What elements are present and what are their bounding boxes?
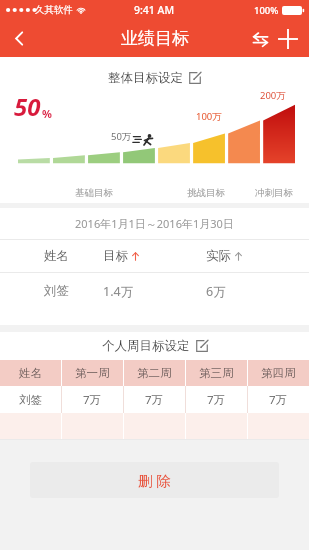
- button[interactable]: 删 除: [30, 462, 279, 498]
- staticText: 7万: [207, 392, 226, 408]
- staticText: 第四周: [261, 366, 296, 380]
- staticText: 200万: [260, 89, 286, 102]
- staticText: 第三周: [199, 366, 234, 380]
- button[interactable]: Switch: [248, 27, 272, 51]
- staticText: 个人周目标设定: [102, 338, 190, 354]
- staticText: 整体目标设定: [108, 70, 183, 86]
- staticText: 刘签: [19, 393, 42, 407]
- staticText: 50: [14, 90, 41, 123]
- staticText: 刘签: [44, 283, 69, 299]
- staticText: 7万: [83, 392, 102, 408]
- staticText: %: [42, 106, 52, 121]
- button[interactable]: Back: [0, 20, 38, 57]
- staticText: 100万: [196, 110, 222, 123]
- staticText: 7万: [145, 392, 164, 408]
- staticText: 7万: [269, 392, 288, 408]
- button[interactable]: 整体目标设定: [104, 68, 205, 88]
- button[interactable]: Add: [275, 26, 301, 52]
- staticText: 久其软件: [35, 4, 73, 16]
- staticText: 实际: [206, 248, 231, 264]
- staticText: 基础目标: [75, 187, 113, 199]
- button[interactable]: 刘签: [0, 273, 309, 309]
- staticText: 9:41 AM: [134, 3, 175, 17]
- staticText: 删 除: [138, 470, 171, 490]
- staticText: 50万: [111, 130, 132, 143]
- button[interactable]: 刘签: [0, 386, 309, 413]
- button[interactable]: 个人周目标设定: [98, 336, 212, 356]
- staticText: 2016年1月1日～2016年1月30日: [75, 216, 234, 231]
- staticText: 6万: [206, 283, 226, 300]
- staticText: 第二周: [137, 366, 172, 380]
- staticText: 目标: [103, 248, 128, 264]
- staticText: 第一周: [75, 366, 110, 380]
- staticText: 业绩目标: [121, 28, 189, 49]
- staticText: 1.4万: [103, 283, 134, 300]
- staticText: 100%: [254, 4, 279, 17]
- staticText: 冲刺目标: [255, 187, 293, 199]
- staticText: 姓名: [44, 248, 69, 264]
- staticText: 姓名: [19, 366, 42, 380]
- staticText: 挑战目标: [187, 187, 225, 199]
